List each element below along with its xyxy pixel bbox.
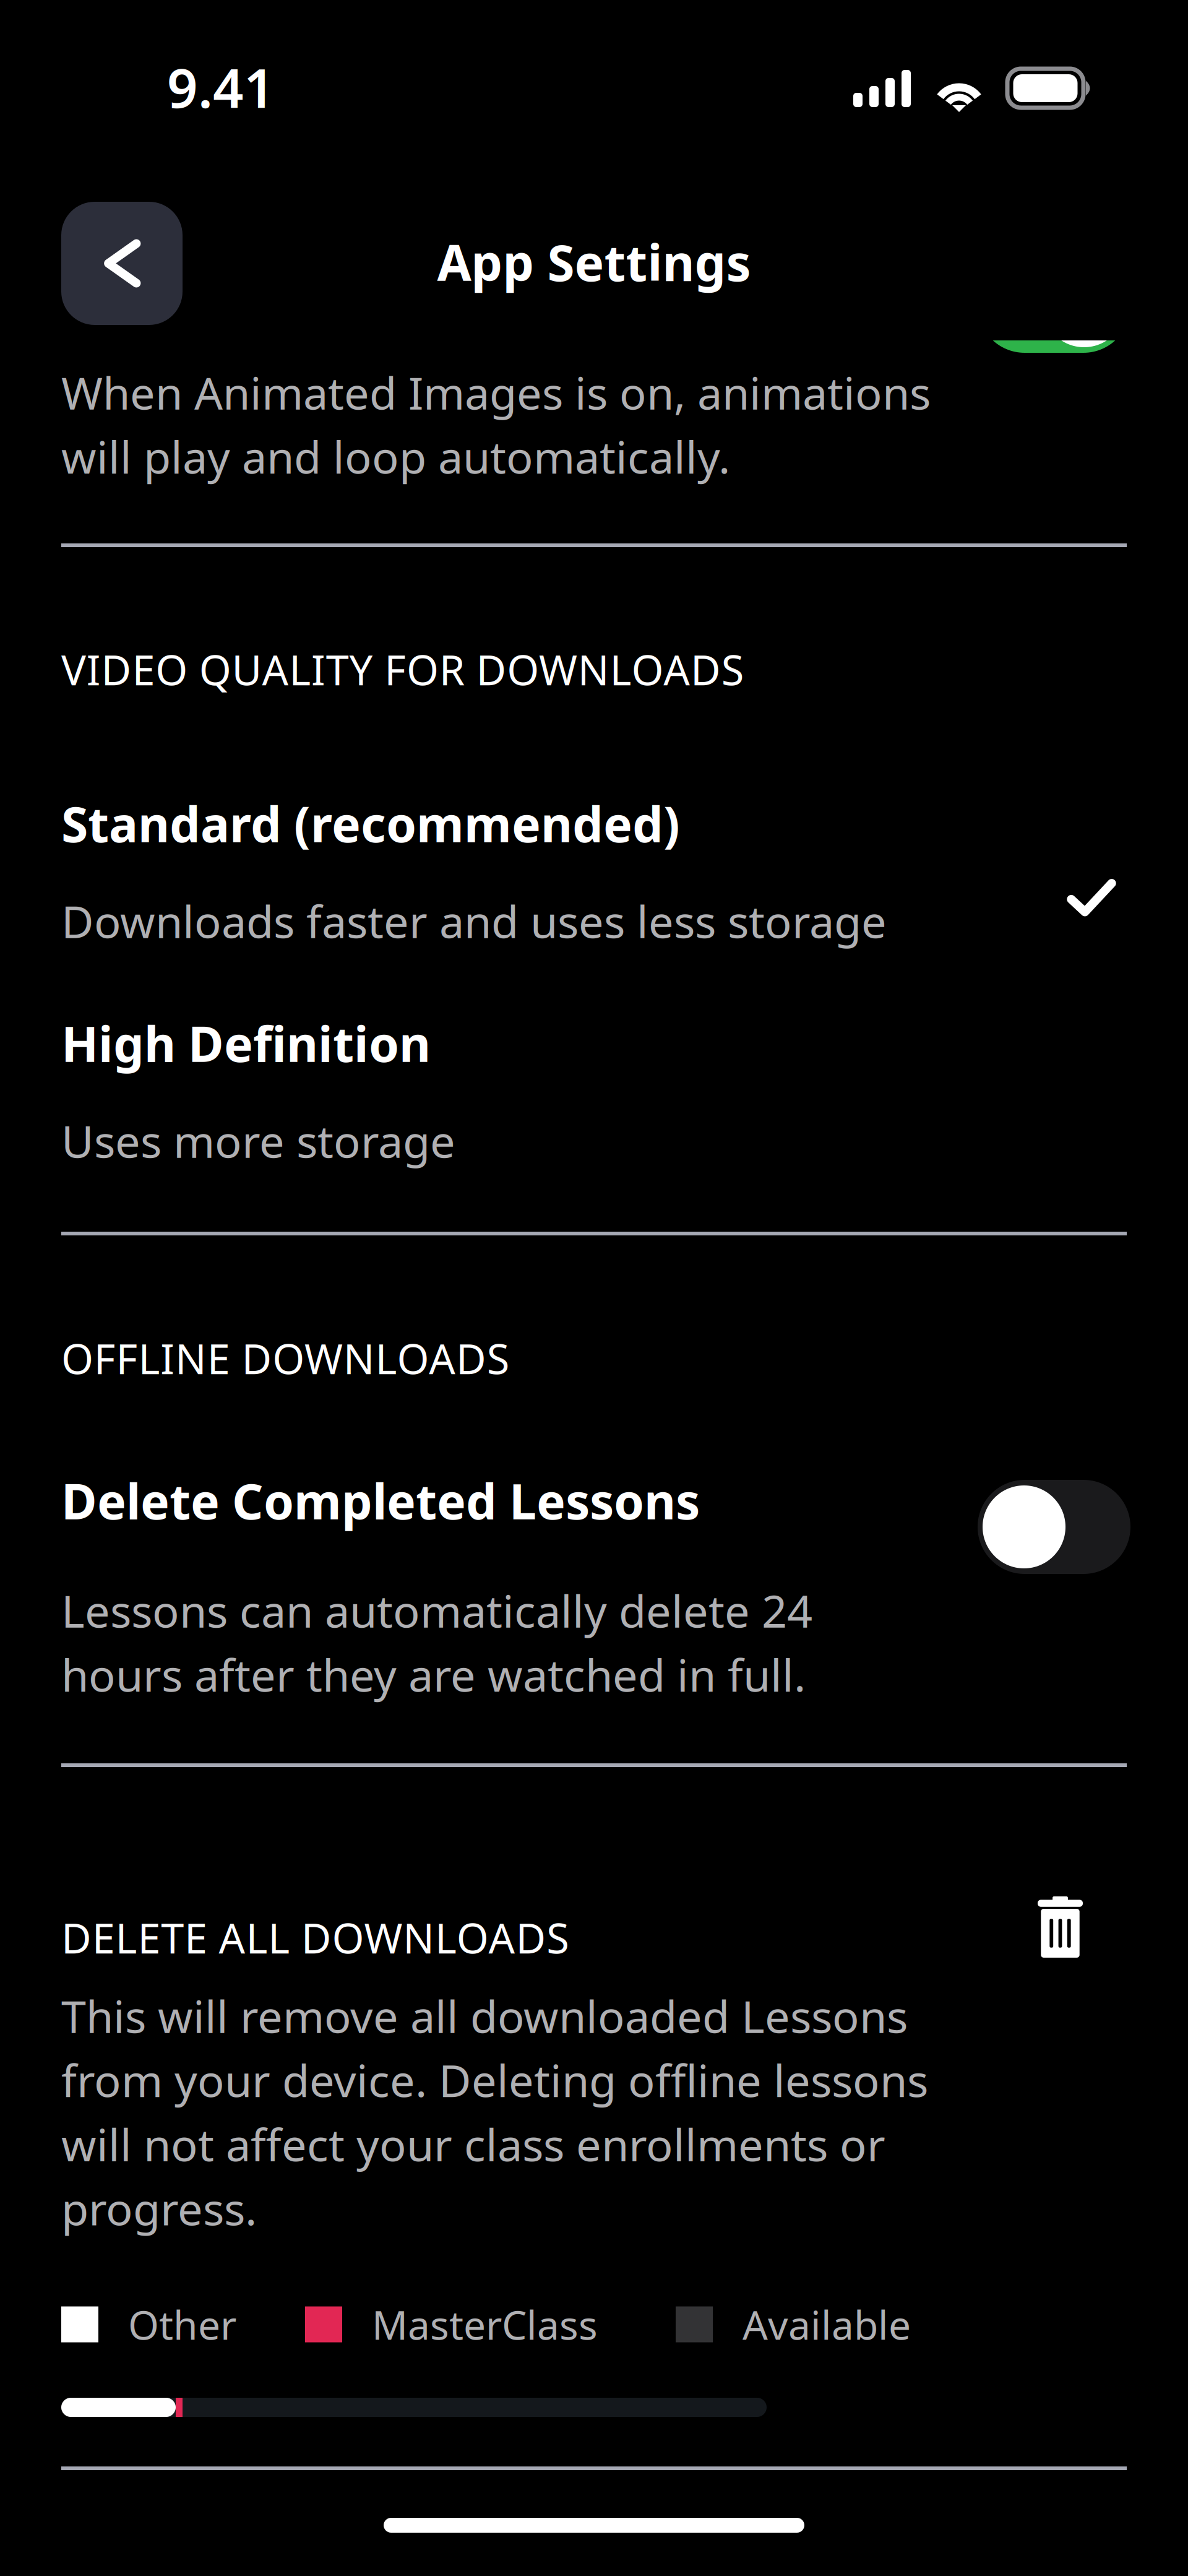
staticText: Other [128,2298,236,2351]
staticText: This will remove all downloaded Lessons … [61,1986,928,2238]
button[interactable]: Back [61,202,183,325]
staticText: OFFLINE DOWNLOADS [61,1331,510,1385]
button[interactable]: High Definition [61,1011,1127,1177]
staticText: VIDEO QUALITY FOR DOWNLOADS [61,642,744,697]
staticText: Available [742,2298,911,2351]
staticText: Downloads faster and uses less storage [61,891,887,950]
staticText: High Definition [61,1011,431,1075]
staticText: Delete Completed Lessons [61,1468,700,1533]
staticText: Uses more storage [61,1111,455,1170]
button[interactable]: Standard (recommended) [61,791,1127,957]
button[interactable]: DELETE ALL DOWNLOADS [61,1896,1127,1964]
button[interactable]: Delete Completed Lessons [978,1480,1130,1574]
staticText: DELETE ALL DOWNLOADS [61,1910,569,1965]
staticText: 9.41 [167,51,275,123]
staticText: Standard (recommended) [61,791,680,856]
staticText: When Animated Images is on, animations w… [61,363,931,486]
staticText: App Settings [437,229,751,295]
staticText: MasterClass [372,2298,598,2351]
staticText: Lessons can automatically delete 24 hour… [61,1581,812,1704]
